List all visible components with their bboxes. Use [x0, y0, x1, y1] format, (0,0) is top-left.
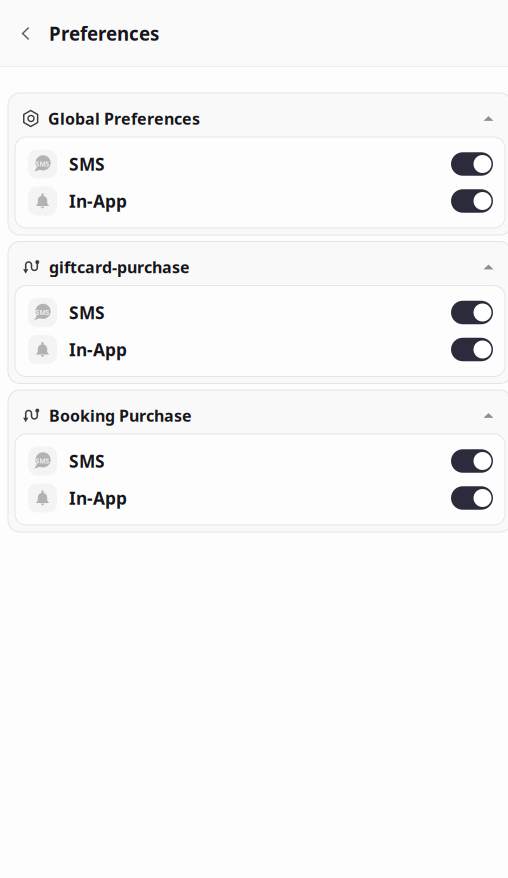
- button[interactable]: Toggle notification channel: [451, 301, 493, 324]
- button[interactable]: Global Preferences: [8, 93, 508, 137]
- staticText: SMS: [69, 449, 105, 472]
- button[interactable]: Toggle notification channel: [451, 449, 493, 473]
- staticText: SMS: [69, 152, 105, 175]
- staticText: giftcard-purchase: [49, 256, 190, 278]
- staticText: In-App: [69, 189, 127, 212]
- button[interactable]: Booking Purchase: [8, 390, 508, 434]
- button[interactable]: Toggle notification channel: [451, 486, 493, 510]
- staticText: Preferences: [49, 21, 159, 46]
- staticText: Global Preferences: [48, 108, 200, 129]
- staticText: SMS: [35, 457, 49, 465]
- button[interactable]: In-App: [15, 331, 505, 368]
- staticText: In-App: [69, 338, 127, 361]
- button[interactable]: Toggle notification channel: [451, 152, 493, 176]
- staticText: SMS: [35, 308, 49, 317]
- button[interactable]: SMS: [15, 442, 505, 479]
- staticText: Booking Purchase: [49, 405, 192, 426]
- staticText: In-App: [69, 486, 127, 509]
- button[interactable]: SMS: [15, 145, 505, 182]
- button[interactable]: giftcard-purchase: [8, 241, 508, 285]
- button[interactable]: Toggle notification channel: [451, 189, 493, 213]
- staticText: SMS: [69, 301, 105, 324]
- button[interactable]: SMS: [15, 294, 505, 331]
- button[interactable]: Toggle notification channel: [451, 338, 493, 361]
- staticText: SMS: [35, 160, 49, 168]
- button[interactable]: Back: [13, 11, 39, 55]
- button[interactable]: In-App: [15, 182, 505, 219]
- button[interactable]: In-App: [15, 479, 505, 516]
